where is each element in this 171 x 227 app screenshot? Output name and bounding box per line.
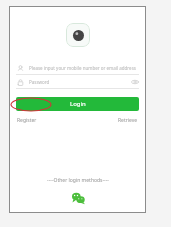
button[interactable]: Please input your mobile number or email… xyxy=(16,61,139,74)
staticText: Login xyxy=(70,100,86,108)
button[interactable]: Show password xyxy=(130,77,139,86)
button[interactable]: Password xyxy=(16,75,139,88)
staticText: Register xyxy=(17,117,37,124)
button[interactable]: Login xyxy=(16,97,139,111)
button[interactable]: Retrieve xyxy=(117,116,139,125)
staticText: Please input your mobile number or email… xyxy=(29,65,139,71)
button[interactable]: Register xyxy=(16,116,38,125)
button[interactable]: Sign in with WeChat xyxy=(70,190,86,206)
staticText: Password xyxy=(29,79,127,85)
staticText: Retrieve xyxy=(118,117,138,124)
staticText: ----Other login methods---- xyxy=(47,177,109,184)
